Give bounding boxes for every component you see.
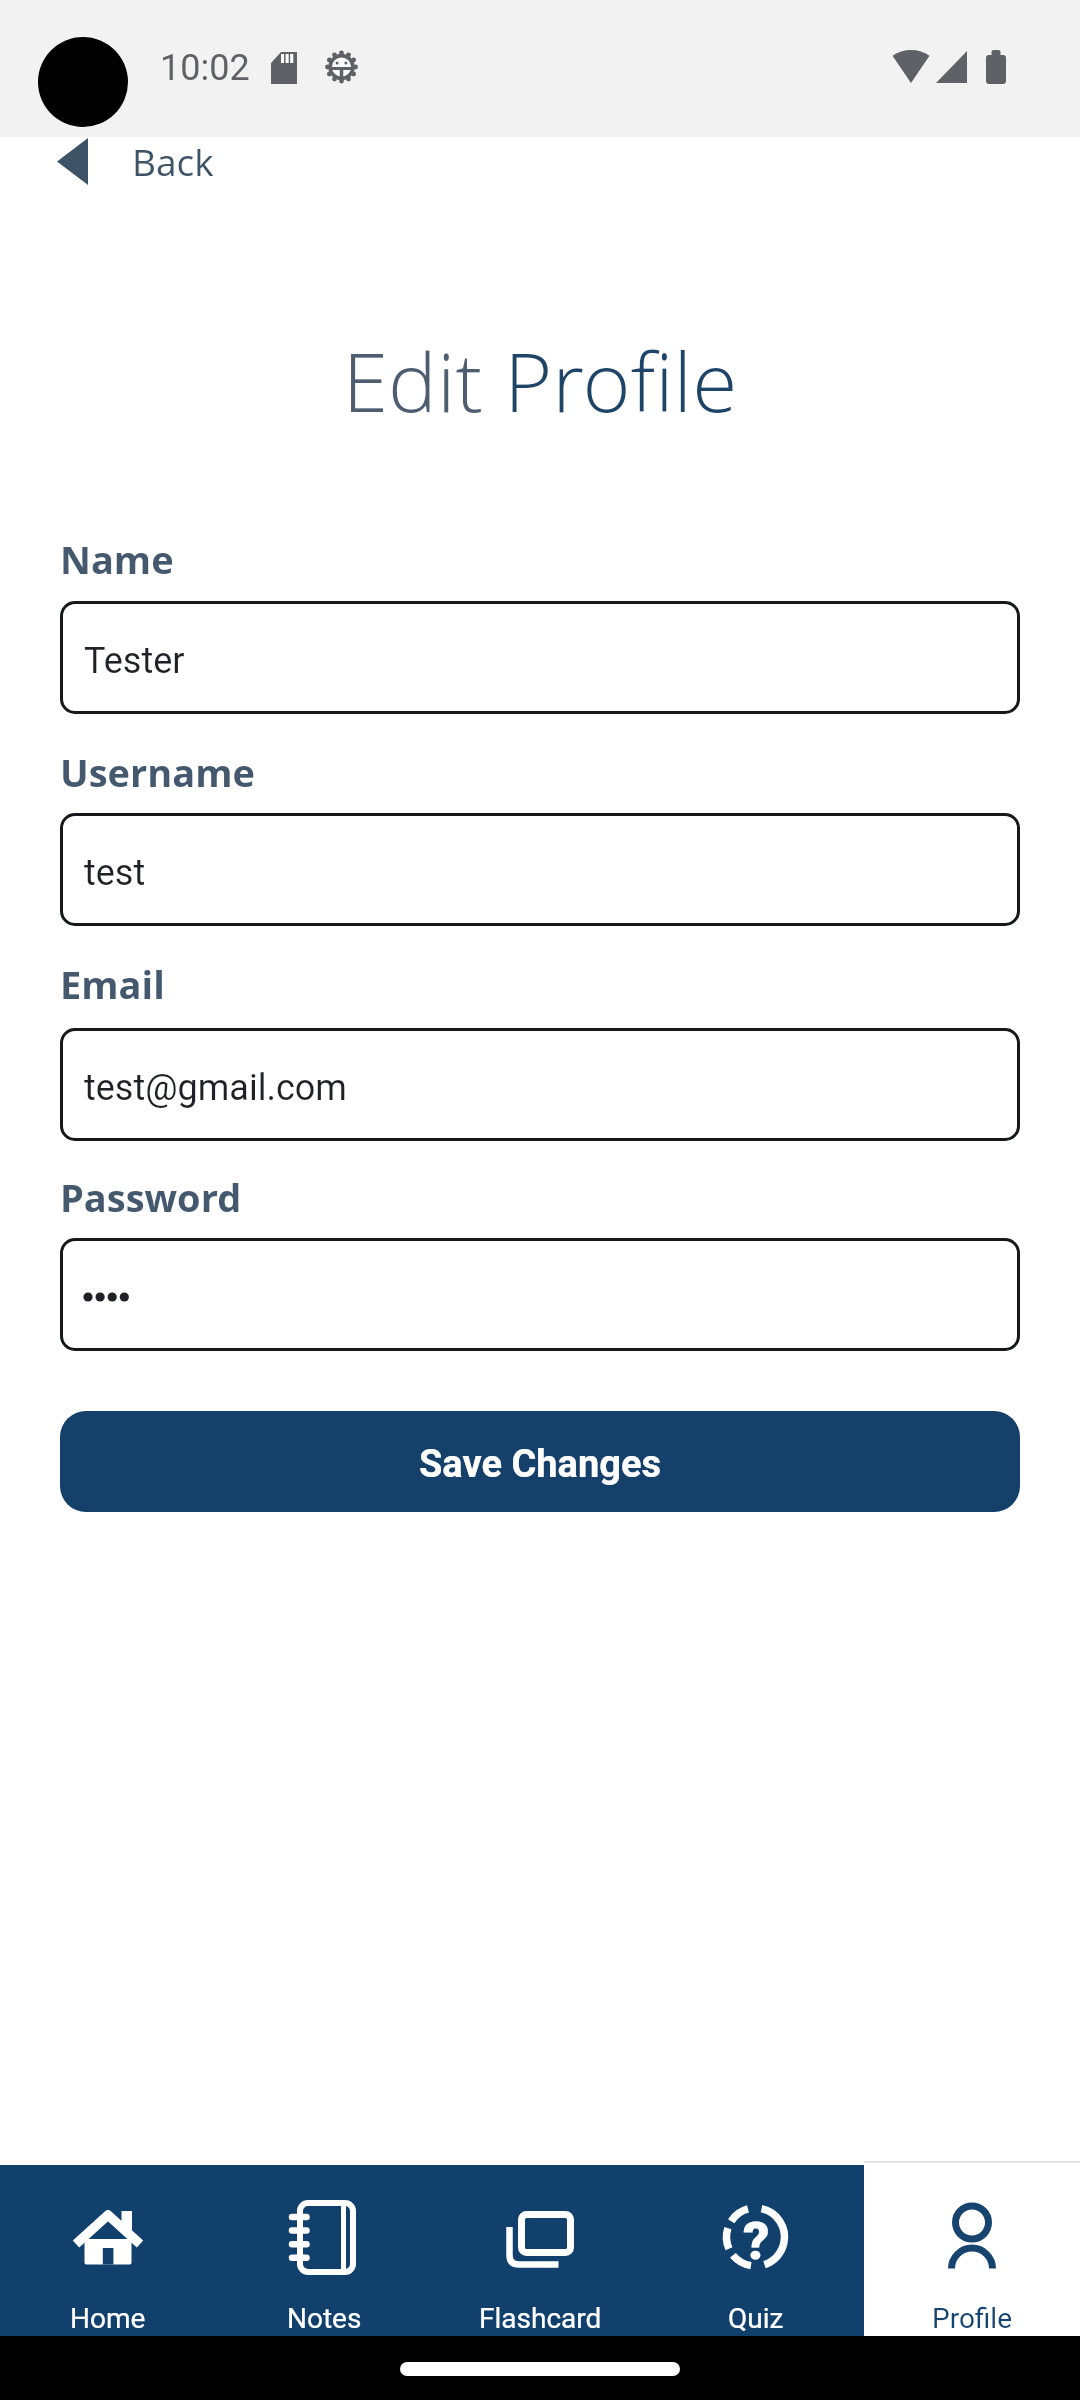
staticText: Save Changes <box>419 1442 662 1487</box>
staticText: Notes <box>287 2302 362 2335</box>
staticText: Profile <box>932 2302 1013 2335</box>
staticText: Edit Profile <box>0 324 1080 436</box>
staticText: Username <box>60 746 256 798</box>
staticText: test <box>84 852 146 894</box>
staticText: Password <box>60 1171 242 1223</box>
staticText: Back <box>132 136 214 186</box>
staticText: Name <box>60 533 174 585</box>
button[interactable]: Tester <box>60 601 1020 714</box>
button[interactable]: Notes <box>216 2165 432 2336</box>
button[interactable]: Back <box>57 136 214 186</box>
staticText: Home <box>70 2302 146 2335</box>
staticText: test@gmail.com <box>84 1067 347 1109</box>
button[interactable]: test@gmail.com <box>60 1028 1020 1141</box>
button[interactable]: Save Changes <box>60 1411 1020 1512</box>
staticText: Quiz <box>728 2302 784 2335</box>
button[interactable]: Flashcard <box>432 2165 648 2336</box>
button[interactable]: Home <box>0 2165 216 2336</box>
staticText: 10:02 <box>160 47 250 89</box>
staticText: Flashcard <box>479 2302 602 2335</box>
button[interactable]: ? <box>648 2165 864 2336</box>
button[interactable]: test <box>60 813 1020 926</box>
staticText: Tester <box>84 640 185 682</box>
staticText: Email <box>60 958 165 1010</box>
button[interactable]: Profile <box>864 2165 1080 2336</box>
staticText: ? <box>743 2211 770 2272</box>
button[interactable] <box>60 1238 1020 1351</box>
